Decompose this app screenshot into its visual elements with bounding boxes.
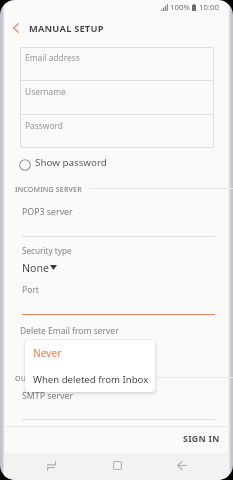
button[interactable]: SIGN IN [179,429,224,448]
button[interactable]: Username [20,81,214,114]
button[interactable]: Back [167,455,196,476]
staticText: Port [22,284,39,296]
staticText: Delete Email from server [20,325,119,337]
staticText: Show password [35,156,107,169]
button[interactable]: Password [20,115,214,148]
button[interactable]: Show password [19,153,107,176]
button[interactable]: Never [25,340,155,366]
button[interactable]: Recents [37,455,66,476]
button[interactable]: Email address [20,47,214,80]
staticText: When deleted from Inbox [33,373,149,386]
staticText: None [22,261,49,275]
staticText: INCOMING SERVER [15,184,82,193]
button[interactable]: None [22,260,57,275]
staticText: POP3 server [22,206,73,218]
staticText: Never [33,346,62,360]
button[interactable]: POP3 server [22,201,214,222]
staticText: Email address [25,52,80,63]
staticText: SIGN IN [183,433,220,445]
staticText: 10:00 [199,2,219,13]
staticText: Password [25,120,63,131]
button[interactable]: Home [103,455,132,476]
staticText: Username [25,86,66,97]
button[interactable]: SMTP server [22,385,214,406]
button[interactable]: When deleted from Inbox [25,366,155,392]
staticText: SMTP server [22,390,74,402]
button[interactable]: Navigate up [3,15,29,41]
staticText: MANUAL SETUP [29,22,104,35]
staticText: OUTGOING SERVER [15,373,83,382]
staticText: Security type [22,245,72,256]
staticText: 100% [170,2,190,13]
